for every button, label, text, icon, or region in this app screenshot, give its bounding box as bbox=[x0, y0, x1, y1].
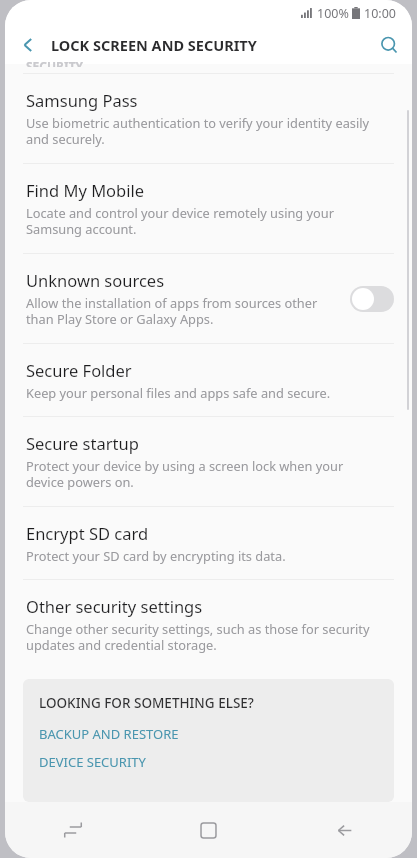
button[interactable]: Home bbox=[140, 802, 276, 858]
button[interactable]: BACKUP AND RESTORE bbox=[39, 720, 378, 748]
staticText: Find My Mobile bbox=[26, 179, 145, 201]
button[interactable]: Find My Mobile bbox=[5, 164, 412, 254]
staticText: Change other security settings, such as … bbox=[26, 620, 372, 654]
staticText: 100% bbox=[317, 5, 349, 22]
button[interactable]: Secure Folder bbox=[5, 344, 412, 417]
button[interactable]: Other security settings bbox=[5, 580, 412, 669]
staticText: BACKUP AND RESTORE bbox=[39, 725, 179, 743]
staticText: Allow the installation of apps from sour… bbox=[26, 294, 336, 328]
button[interactable]: DEVICE SECURITY bbox=[39, 748, 378, 776]
button[interactable]: Secure startup bbox=[5, 417, 412, 507]
button[interactable]: Unknown sources toggle bbox=[350, 286, 394, 312]
button[interactable]: Search bbox=[366, 26, 412, 64]
button[interactable]: Back bbox=[276, 802, 412, 858]
button[interactable]: Samsung Pass bbox=[5, 74, 412, 164]
staticText: Keep your personal files and apps safe a… bbox=[26, 384, 331, 401]
staticText: DEVICE SECURITY bbox=[39, 753, 146, 771]
staticText: Encrypt SD card bbox=[26, 522, 149, 544]
staticText: LOCK SCREEN AND SECURITY bbox=[51, 35, 366, 55]
staticText: Use biometric authentication to verify y… bbox=[26, 114, 372, 148]
staticText: Secure Folder bbox=[26, 359, 132, 381]
staticText: Locate and control your device remotely … bbox=[26, 204, 372, 238]
button[interactable]: Unknown sources bbox=[5, 254, 412, 344]
staticText: Other security settings bbox=[26, 595, 203, 617]
button[interactable]: Back bbox=[5, 26, 51, 64]
staticText: Secure startup bbox=[26, 432, 139, 454]
staticText: LOOKING FOR SOMETHING ELSE? bbox=[39, 694, 254, 712]
staticText: 10:00 bbox=[364, 5, 396, 22]
button[interactable]: Encrypt SD card bbox=[5, 507, 412, 580]
staticText: Unknown sources bbox=[26, 269, 165, 291]
staticText: Protect your SD card by encrypting its d… bbox=[26, 547, 286, 564]
staticText: Protect your device by using a screen lo… bbox=[26, 457, 372, 491]
button[interactable]: Recents bbox=[5, 802, 140, 858]
staticText: Samsung Pass bbox=[26, 89, 138, 111]
staticText: SECURITY bbox=[26, 58, 84, 67]
